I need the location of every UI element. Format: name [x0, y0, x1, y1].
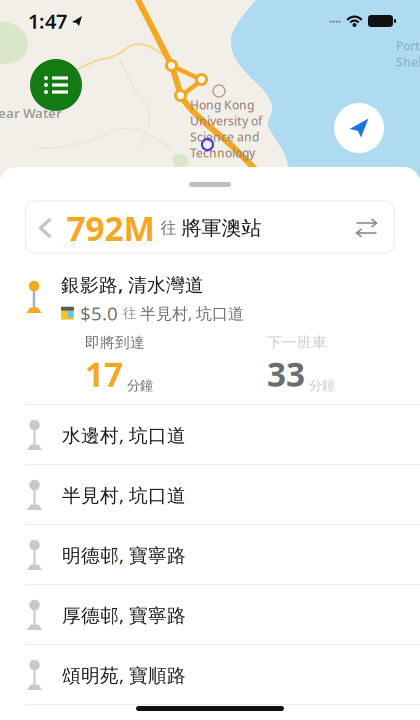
staticText: Port [396, 38, 420, 54]
button[interactable]: 銀影路, 清水灣道 [0, 253, 420, 405]
staticText: 半見村, 坑口道 [62, 483, 186, 507]
staticText: 17 [85, 352, 123, 396]
staticText: 水邊村, 坑口道 [62, 423, 186, 447]
staticText: 792M [66, 206, 154, 250]
staticText: 半見村, 坑口道 [140, 303, 244, 324]
staticText: Shelter [396, 54, 420, 70]
staticText: 下一班車 [267, 334, 327, 352]
staticText: 即將到達 [85, 334, 145, 352]
staticText: ···· [329, 13, 341, 29]
button[interactable]: 792M [25, 201, 394, 253]
staticText: 明德邨, 寶寧路 [62, 543, 186, 567]
staticText: Hong Kong [190, 97, 254, 113]
button[interactable]: Route list [30, 59, 82, 111]
staticText: 33 [267, 352, 305, 396]
staticText: 往 [160, 218, 176, 238]
staticText: 厚德邨, 寶寧路 [62, 603, 186, 627]
staticText: $5.0 [80, 301, 118, 326]
staticText: 頌明苑, 寶順路 [62, 663, 186, 687]
button[interactable]: Current location [334, 103, 384, 153]
button[interactable]: 半見村, 坑口道 [0, 465, 420, 525]
staticText: Technology [190, 145, 255, 161]
staticText: 將軍澳站 [181, 216, 261, 240]
staticText: Science and [190, 129, 259, 145]
button[interactable]: 頌明苑, 寶順路 [0, 645, 420, 705]
staticText: 1:47 [28, 8, 67, 34]
staticText: University of [190, 113, 262, 129]
button[interactable]: 明德邨, 寶寧路 [0, 525, 420, 585]
staticText: 往 [123, 305, 136, 321]
staticText: 分鐘 [127, 377, 153, 394]
button[interactable]: 厚德邨, 寶寧路 [0, 585, 420, 645]
staticText: 分鐘 [309, 377, 335, 394]
staticText: ear Water [0, 104, 62, 122]
staticText: 銀影路, 清水灣道 [61, 272, 204, 297]
button[interactable]: 水邊村, 坑口道 [0, 405, 420, 465]
